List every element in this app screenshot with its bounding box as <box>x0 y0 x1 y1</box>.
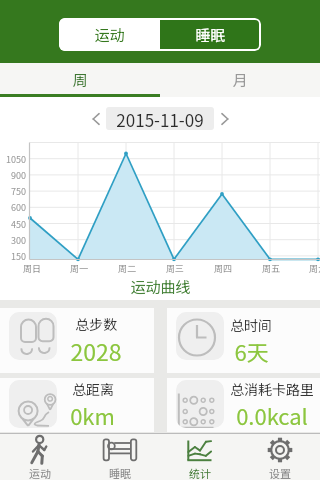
staticText: 周六 <box>306 262 320 275</box>
staticText: 总步数 <box>75 314 117 334</box>
button[interactable] <box>218 112 232 126</box>
staticText: 周四 <box>211 262 235 275</box>
button[interactable]: 设置 <box>240 433 320 480</box>
button[interactable]: 总消耗卡路里 <box>167 378 320 432</box>
staticText: 2028 <box>70 334 122 367</box>
button[interactable]: 运动 <box>59 18 160 51</box>
button[interactable]: 运动曲线 <box>130 276 191 298</box>
staticText: 周日 <box>20 262 44 275</box>
staticText: 运动曲线 <box>130 276 191 298</box>
button[interactable]: 总距离 <box>0 378 154 432</box>
button[interactable]: 睡眠 <box>160 18 261 51</box>
button[interactable]: 总时间 <box>167 308 320 373</box>
button[interactable]: 睡眠 <box>80 433 160 480</box>
staticText: 月 <box>232 69 248 91</box>
staticText: 设置 <box>269 465 291 480</box>
staticText: 睡眠 <box>109 465 131 480</box>
button[interactable]: 运动 <box>0 433 80 480</box>
staticText: 周 <box>72 69 88 91</box>
button[interactable]: 周 <box>0 63 160 97</box>
button[interactable]: 总步数 <box>0 308 154 373</box>
staticText: 周二 <box>115 262 139 275</box>
staticText: 1050 <box>0 153 26 166</box>
staticText: 300 <box>0 234 26 247</box>
staticText: 睡眠 <box>195 24 226 46</box>
staticText: 450 <box>0 218 26 231</box>
staticText: 150 <box>0 250 26 263</box>
staticText: 总消耗卡路里 <box>230 379 314 399</box>
staticText: 900 <box>0 169 26 182</box>
staticText: 运动 <box>94 24 125 46</box>
staticText: 0km <box>70 399 115 431</box>
staticText: 600 <box>0 201 26 214</box>
staticText: 总时间 <box>230 315 272 335</box>
staticText: 统计 <box>189 465 211 480</box>
staticText: 周三 <box>163 262 187 275</box>
staticText: 总距离 <box>72 379 114 399</box>
staticText: 周五 <box>259 262 283 275</box>
staticText: 运动 <box>29 465 51 480</box>
staticText: 周一 <box>67 262 91 275</box>
staticText: 6天 <box>234 335 269 367</box>
button[interactable]: 月 <box>160 63 320 97</box>
staticText: 2015-11-09 <box>116 107 204 130</box>
staticText: 0.0kcal <box>236 399 308 431</box>
staticText: 750 <box>0 185 26 198</box>
button[interactable]: 统计 <box>160 433 240 480</box>
button[interactable]: 2015-11-09 <box>106 107 214 130</box>
button[interactable] <box>89 112 103 126</box>
